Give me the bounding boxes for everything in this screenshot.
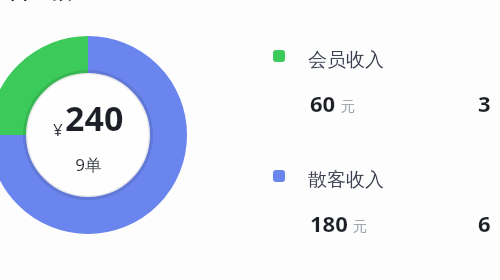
staticText: ¥ [53,118,63,141]
staticText: 3 [478,88,491,118]
staticText: 180 [310,208,348,238]
staticText: 元 [353,218,367,236]
staticText: 60 [310,88,336,118]
button[interactable]: 营业额 [8,0,71,4]
button[interactable]: 散客收入 [273,168,500,236]
button[interactable]: 会员收入 [273,48,500,116]
button[interactable]: 营业额构成环形图 [0,36,187,234]
staticText: 6 [478,208,491,238]
staticText: 元 [341,98,355,116]
staticText: 会员收入 [308,48,384,72]
staticText: 9单 [75,153,102,176]
staticText: 散客收入 [308,168,384,192]
staticText: 营业额 [8,0,71,4]
staticText: 240 [65,95,124,141]
